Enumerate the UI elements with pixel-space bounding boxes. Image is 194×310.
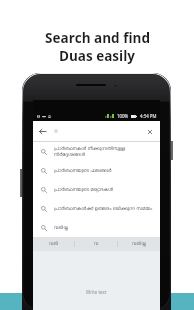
- staticText: പ്രാർത്ഥനകൾ നീക്കുന്നതിനുള്ള നിർദ്ദേശങ്ങ…: [54, 146, 126, 157]
- button[interactable]: Clear search: [144, 126, 155, 137]
- staticText: വ: [94, 241, 99, 247]
- staticText: വലിയ്യ: [132, 241, 147, 247]
- button[interactable]: വലിയ്യ: [33, 218, 160, 237]
- button[interactable]: പ്രാർത്ഥനകൾക്ക് ഉത്തരം ലഭിക്കുന്ന സമയം: [33, 199, 160, 218]
- button[interactable]: വ: [75, 237, 117, 251]
- button[interactable]: വലി: [33, 237, 74, 251]
- staticText: വലി: [49, 241, 59, 247]
- button[interactable]: Back: [37, 126, 48, 137]
- staticText: 4:54 PM: [140, 113, 157, 119]
- button[interactable]: പ്രാർത്ഥനയുടെ മര്യാദകൾ: [33, 180, 160, 199]
- staticText: വലിയ്യ: [54, 225, 69, 231]
- staticText: Write text: [86, 289, 107, 295]
- button[interactable]: പ്രാർത്ഥനയുടെ ഫലങ്ങൾ: [33, 161, 160, 180]
- staticText: 100%: [117, 113, 129, 119]
- staticText: പ്രാർത്ഥനയുടെ മര്യാദകൾ: [54, 187, 114, 193]
- staticText: പ്രാർത്ഥനയുടെ ഫലങ്ങൾ: [54, 168, 112, 174]
- staticText: പ്രാർത്ഥനകൾക്ക് ഉത്തരം ലഭിക്കുന്ന സമയം: [54, 206, 153, 212]
- staticText: Duas easily: [59, 47, 135, 65]
- staticText: Search and find: [45, 29, 150, 47]
- button[interactable]: പ്രാർത്ഥനകൾ നീക്കുന്നതിനുള്ള നിർദ്ദേശങ്ങ…: [33, 142, 160, 161]
- button[interactable]: വലിയ്യ: [118, 237, 160, 251]
